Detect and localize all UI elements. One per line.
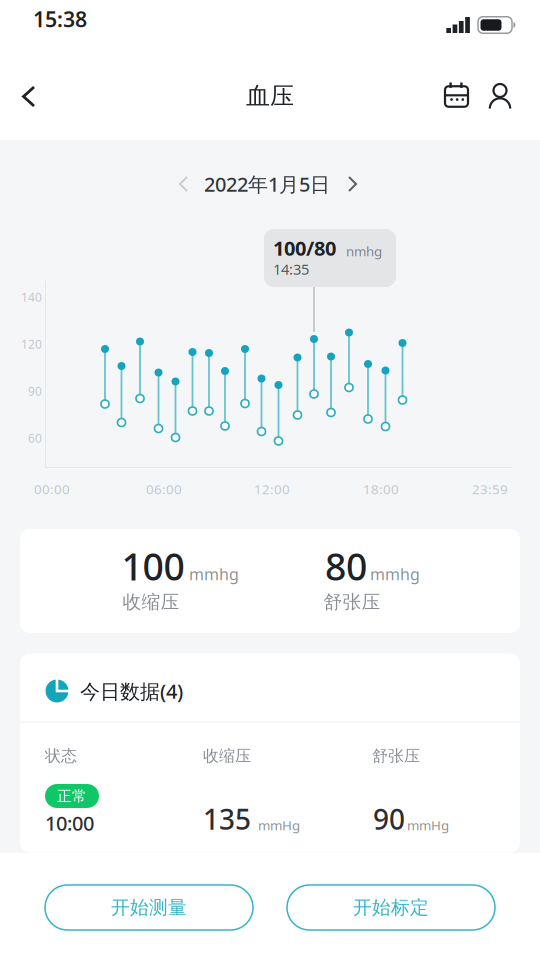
staticText: 80 (325, 541, 367, 591)
staticText: 60 (28, 430, 42, 446)
button[interactable]: Back (7, 74, 51, 118)
button[interactable]: Previous day (169, 169, 199, 199)
staticText: 开始标定 (353, 896, 429, 919)
staticText: mmHg (407, 816, 449, 834)
staticText: 血压 (246, 81, 294, 111)
staticText: 100 (121, 541, 184, 591)
staticText: 18:00 (363, 480, 399, 498)
staticText: 06:00 (146, 480, 182, 498)
staticText: 舒张压 (323, 590, 380, 613)
staticText: 10:00 (45, 810, 94, 836)
button[interactable]: Calendar (436, 77, 476, 117)
staticText: 收缩压 (122, 590, 179, 613)
staticText: 14:35 (273, 259, 309, 279)
staticText: 状态 (45, 746, 77, 766)
staticText: 12:00 (254, 480, 290, 498)
staticText: nmhg (346, 242, 382, 260)
button[interactable]: 正常 (20, 774, 520, 852)
staticText: 100/80 (273, 235, 336, 261)
button[interactable]: Next day (337, 169, 367, 199)
staticText: 舒张压 (372, 746, 420, 766)
staticText: mmhg (189, 563, 239, 585)
staticText: 15:38 (33, 5, 87, 33)
staticText: 120 (21, 336, 42, 352)
staticText: 收缩压 (203, 746, 251, 766)
staticText: 00:00 (34, 480, 70, 498)
button[interactable]: 开始标定 (287, 885, 495, 930)
staticText: 23:59 (472, 480, 508, 498)
staticText: 今日数据(4) (80, 678, 183, 704)
staticText: mmHg (258, 816, 300, 834)
staticText: mmhg (370, 563, 420, 585)
button[interactable]: 开始测量 (45, 885, 253, 930)
button[interactable]: Profile (480, 77, 520, 117)
staticText: 正常 (57, 787, 87, 805)
staticText: 2022年1月5日 (204, 171, 330, 197)
staticText: 开始测量 (111, 896, 187, 919)
staticText: 90 (373, 800, 405, 838)
staticText: 90 (28, 383, 42, 399)
staticText: 140 (21, 289, 42, 305)
staticText: 135 (203, 800, 251, 838)
